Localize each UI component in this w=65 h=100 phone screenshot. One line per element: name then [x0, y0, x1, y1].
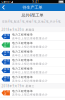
staticText: 待生产 — [4, 33, 10, 40]
button[interactable]: 已完成 — [0, 89, 65, 97]
staticText: 已完成 — [4, 90, 10, 96]
staticText: 待生产 — [4, 59, 10, 65]
staticText: 安装4笔,配送1笔,维修1笔,其他2笔,共计6笔 — [2, 20, 61, 23]
button[interactable]: 待生产 — [0, 49, 65, 58]
button[interactable]: 待生产 — [0, 58, 65, 66]
staticText: 总共6笔工单 — [21, 12, 43, 18]
staticText: 待生产 — [4, 76, 10, 82]
staticText: 该单位上报总维修数量合计 — [12, 37, 48, 40]
staticText: 待生产 — [4, 50, 10, 57]
staticText: 该单位上报总维修数量合计 — [12, 79, 48, 82]
staticText: 该单位上报总维修数量合计 — [12, 71, 48, 74]
button[interactable]: 待生产 — [0, 75, 65, 83]
staticText: 电力工程维修单 — [12, 41, 33, 45]
staticText: 9:41 — [32, 0, 39, 3]
staticText: 电力工程维修单 — [12, 50, 33, 53]
staticText: 电力工程维修单 — [12, 33, 33, 36]
button[interactable]: 待生产 — [0, 66, 65, 75]
staticText: 该单位上报总维修数量合计 — [12, 62, 48, 65]
staticText: 待生产 — [4, 67, 10, 74]
staticText: 待生产工单 — [22, 5, 42, 10]
staticText: 电力工程维修单 — [12, 58, 33, 62]
staticText: 电力工程维修单 — [12, 89, 33, 93]
button[interactable]: 生产中 — [0, 41, 65, 49]
staticText: 2018年9月20日 星期四 — [2, 28, 35, 31]
button[interactable]: 待生产 — [0, 32, 65, 41]
staticText: 该单位上报总维修数量合计 — [12, 54, 48, 57]
staticText: 电力工程维修单 — [12, 75, 33, 79]
button[interactable]: Back — [0, 4, 7, 11]
staticText: 该单位上报总维修数量合计 — [12, 93, 48, 96]
staticText: Carrier — [1, 0, 10, 3]
staticText: 生产中 — [4, 42, 10, 48]
staticText: 该单位上报总维修数量合计 — [12, 45, 48, 48]
staticText: 2018年9月19日 星期三 — [2, 84, 35, 88]
staticText: 电力工程维修单 — [12, 67, 33, 70]
